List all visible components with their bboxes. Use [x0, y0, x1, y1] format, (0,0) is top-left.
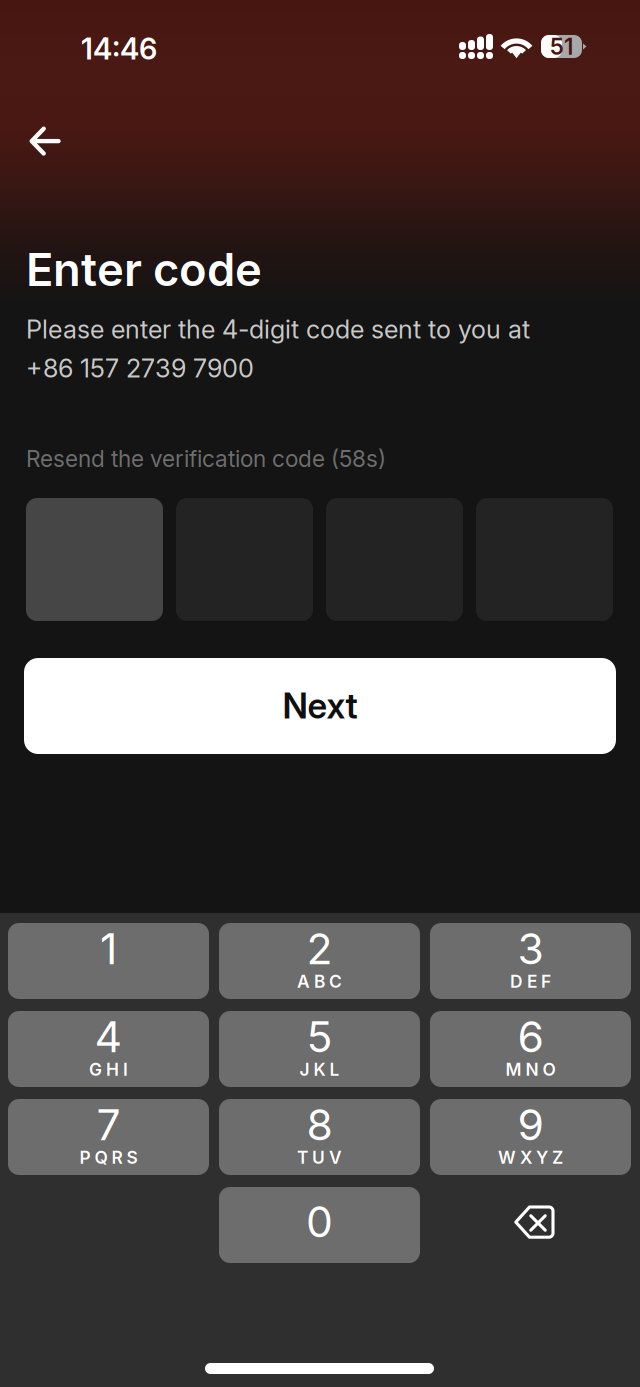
staticText: Next — [282, 685, 357, 727]
staticText: Please enter the 4-digit code sent to yo… — [26, 314, 530, 345]
staticText: 2 — [306, 923, 332, 975]
staticText: T U V — [297, 1147, 342, 1168]
staticText: J K L — [299, 1059, 339, 1080]
staticText: 5 — [306, 1011, 332, 1063]
button[interactable]: 6 — [430, 1011, 631, 1087]
button[interactable]: 4 — [8, 1011, 209, 1087]
button[interactable]: 8 — [219, 1099, 420, 1175]
staticText: 14:46 — [81, 31, 157, 66]
button[interactable]: 1 — [8, 923, 209, 999]
button[interactable]: 5 — [219, 1011, 420, 1087]
staticText: P Q R S — [79, 1147, 137, 1168]
staticText: 3 — [517, 923, 543, 975]
staticText: M N O — [505, 1059, 555, 1080]
staticText: 7 — [96, 1099, 120, 1151]
staticText: 8 — [306, 1099, 332, 1151]
staticText: 51 — [550, 33, 573, 60]
staticText: Resend the verification code (58s) — [26, 445, 386, 472]
staticText: 0 — [306, 1196, 333, 1248]
staticText: 1 — [100, 923, 117, 975]
staticText: W X Y Z — [498, 1147, 563, 1168]
button[interactable]: 7 — [8, 1099, 209, 1175]
button[interactable]: 0 — [219, 1187, 420, 1263]
button[interactable]: 2 — [219, 923, 420, 999]
staticText: G H I — [89, 1059, 128, 1080]
staticText: Enter code — [26, 242, 262, 297]
staticText: 4 — [94, 1011, 122, 1063]
button[interactable]: 9 — [430, 1099, 631, 1175]
staticText: D E F — [510, 971, 551, 992]
staticText: +86 157 2739 7900 — [26, 353, 254, 384]
staticText: 9 — [517, 1099, 543, 1151]
staticText: A B C — [297, 971, 342, 992]
button[interactable]: Next — [24, 658, 616, 754]
staticText: 6 — [517, 1011, 543, 1063]
button[interactable]: Delete — [430, 1187, 631, 1263]
button[interactable]: Back — [8, 109, 82, 173]
button[interactable]: 3 — [430, 923, 631, 999]
